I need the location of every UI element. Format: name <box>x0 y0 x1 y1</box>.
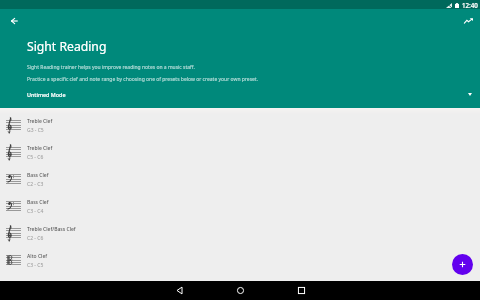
staticText: C3 - C5 <box>27 262 44 269</box>
staticText: Treble Clef <box>27 118 53 125</box>
button[interactable]: Bass Clef <box>0 192 480 219</box>
staticText: C5 - C6 <box>27 154 44 161</box>
staticText: C2 - C6 <box>27 235 44 242</box>
staticText: Treble Clef/Bass Clef <box>27 226 76 233</box>
staticText: Practice a specific clef and note range … <box>27 76 259 83</box>
button[interactable]: Bass Clef <box>0 165 480 192</box>
button[interactable]: Treble Clef/Bass Clef <box>0 219 480 246</box>
staticText: Bass Clef <box>27 199 49 206</box>
staticText: Untimed Mode <box>27 91 66 98</box>
staticText: Sight Reading <box>27 38 107 55</box>
button[interactable]: Untimed Mode <box>0 89 480 108</box>
button[interactable]: Home <box>210 281 271 300</box>
staticText: C3 - C4 <box>27 208 44 215</box>
button[interactable]: Back <box>149 281 210 300</box>
staticText: 12:40 <box>462 1 478 9</box>
button[interactable]: Back <box>4 11 24 31</box>
button[interactable]: Recents <box>271 281 332 300</box>
button[interactable]: Treble Clef <box>0 138 480 165</box>
staticText: Sight Reading trainer helps you improve … <box>27 64 195 71</box>
staticText: Bass Clef <box>27 172 49 179</box>
button[interactable]: Alto Clef <box>0 246 480 273</box>
staticText: Treble Clef <box>27 145 53 152</box>
staticText: G3 - C5 <box>27 127 44 134</box>
button[interactable]: Statistics <box>458 11 478 31</box>
staticText: C2 - C3 <box>27 181 44 188</box>
button[interactable]: Add preset <box>452 254 473 275</box>
button[interactable]: Treble Clef <box>0 111 480 138</box>
staticText: Alto Clef <box>27 253 48 260</box>
